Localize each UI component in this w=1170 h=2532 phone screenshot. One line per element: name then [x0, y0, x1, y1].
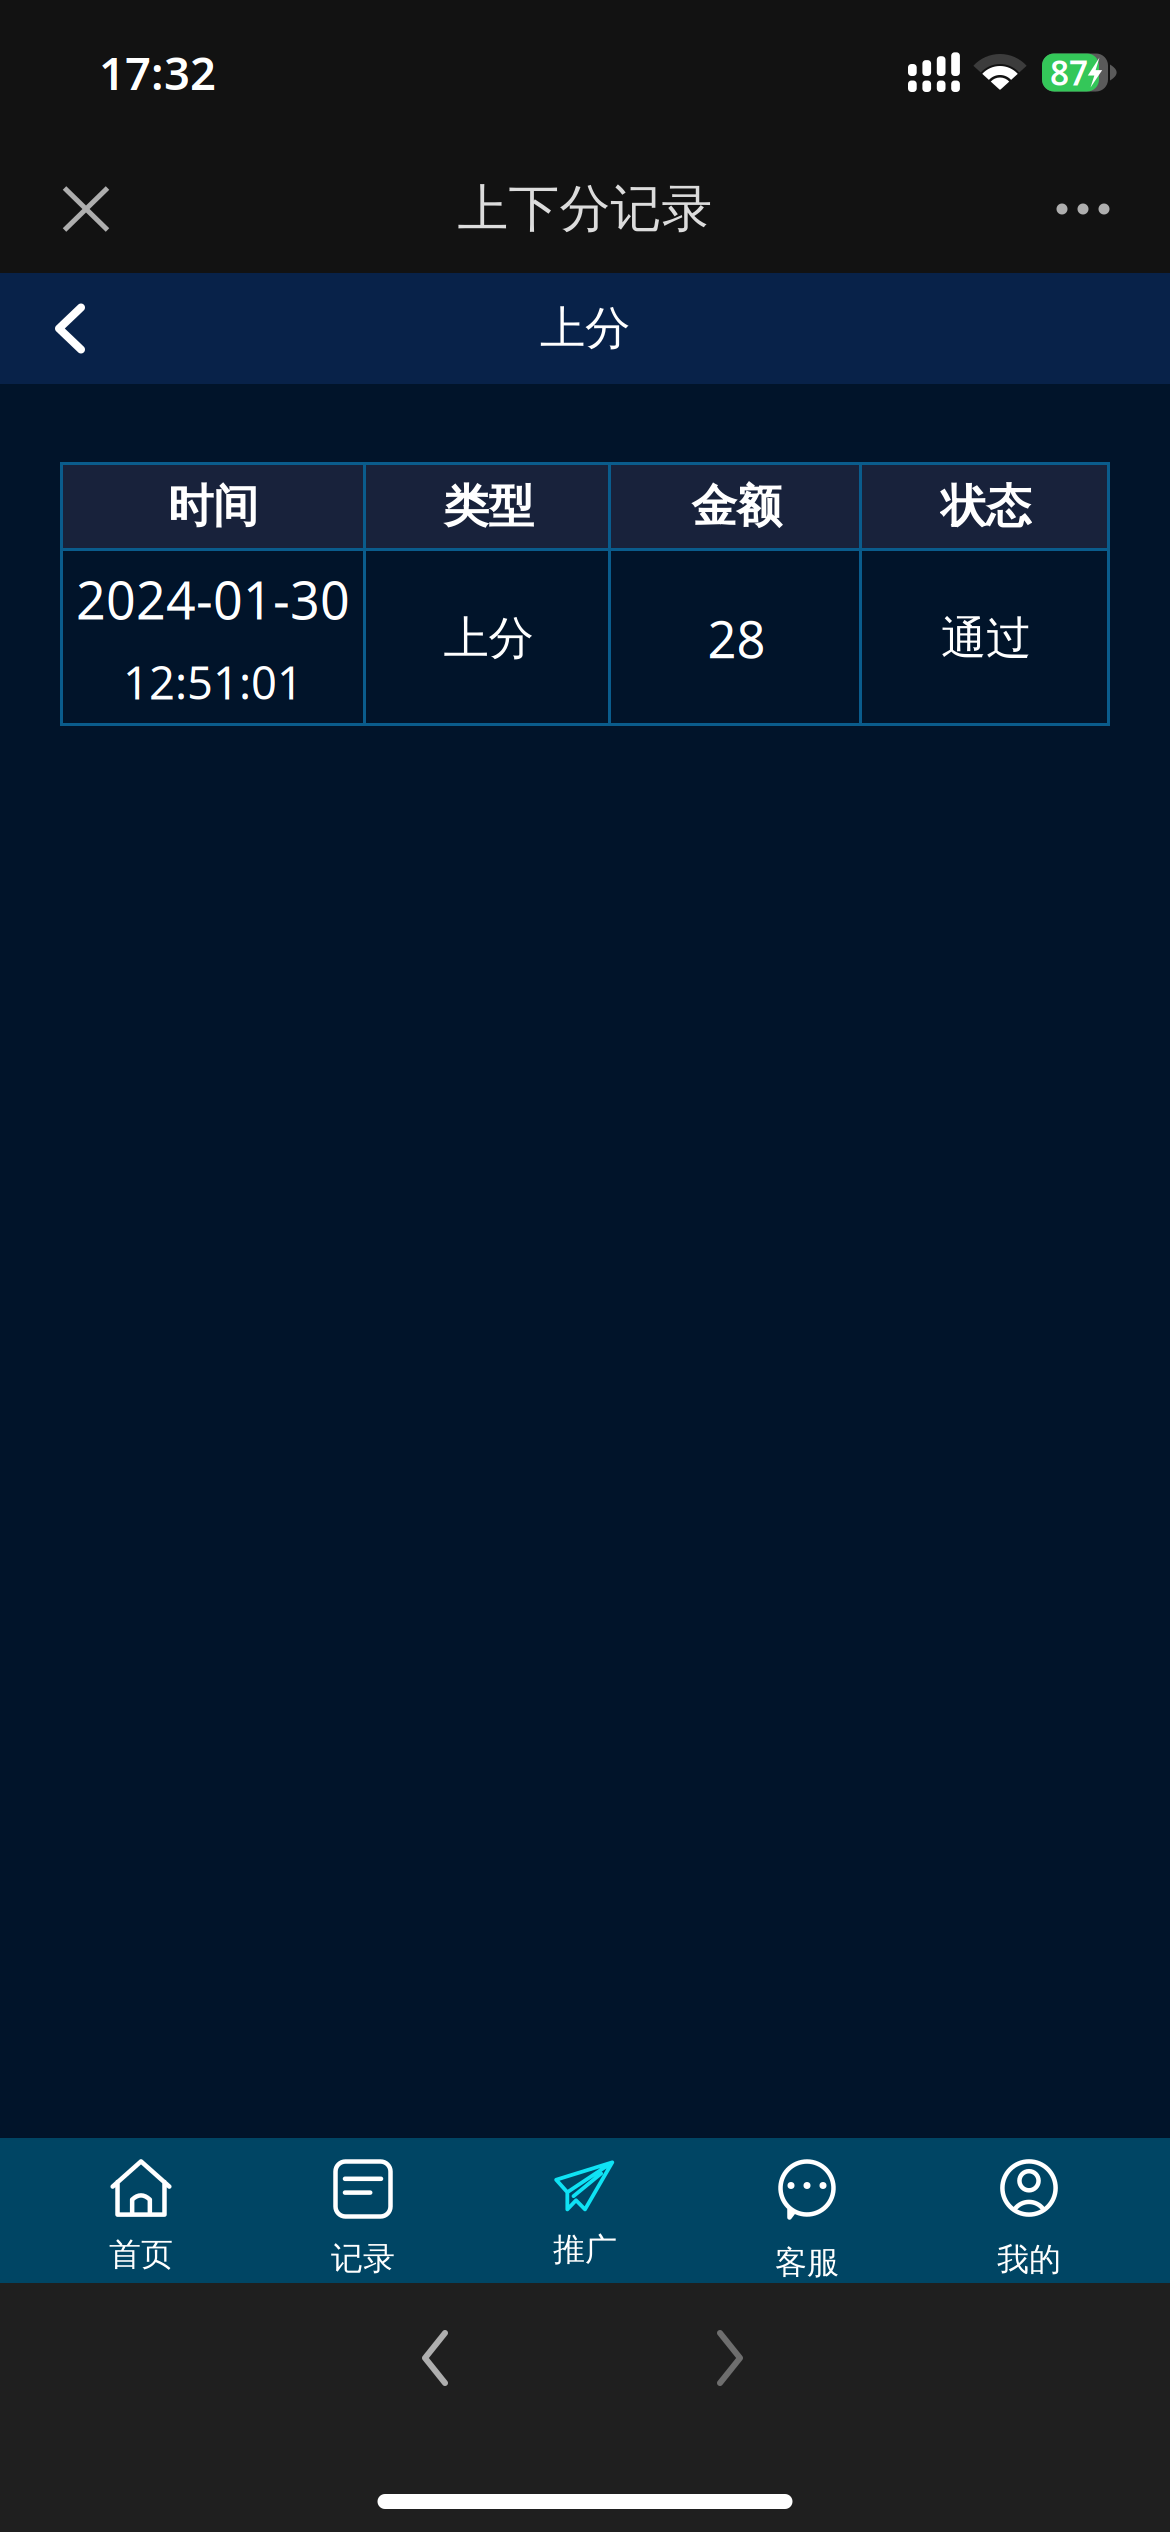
staticText: 我的	[997, 2240, 1061, 2279]
staticText: 上分	[443, 611, 533, 666]
button[interactable]: Close	[33, 145, 139, 273]
staticText: 记录	[331, 2239, 395, 2278]
staticText: 时间	[168, 479, 258, 534]
button[interactable]: 首页	[30, 2138, 252, 2283]
staticText: 金额	[691, 479, 781, 534]
button[interactable]: 推广	[474, 2138, 696, 2283]
button[interactable]: Go back	[375, 2323, 495, 2393]
staticText: 类型	[443, 479, 533, 534]
button[interactable]: More options	[1019, 145, 1147, 273]
button[interactable]: 我的	[918, 2138, 1140, 2283]
staticText: 通过	[941, 611, 1031, 666]
staticText: 87	[1050, 50, 1088, 95]
button[interactable]: Go forward	[670, 2323, 790, 2393]
staticText: 状态	[941, 479, 1031, 534]
staticText: 28	[707, 605, 765, 672]
staticText: 客服	[775, 2243, 839, 2282]
staticText: 首页	[109, 2235, 173, 2274]
staticText: 推广	[553, 2230, 617, 2269]
staticText: 12:51:01	[123, 652, 303, 712]
button[interactable]: 记录	[252, 2138, 474, 2283]
staticText: 上下分记录	[457, 178, 712, 240]
button[interactable]: 客服	[696, 2138, 918, 2283]
staticText: 上分	[540, 301, 630, 356]
button[interactable]: Back	[0, 273, 140, 384]
staticText: 2024-01-30	[76, 565, 350, 634]
staticText: 17:32	[99, 42, 216, 103]
